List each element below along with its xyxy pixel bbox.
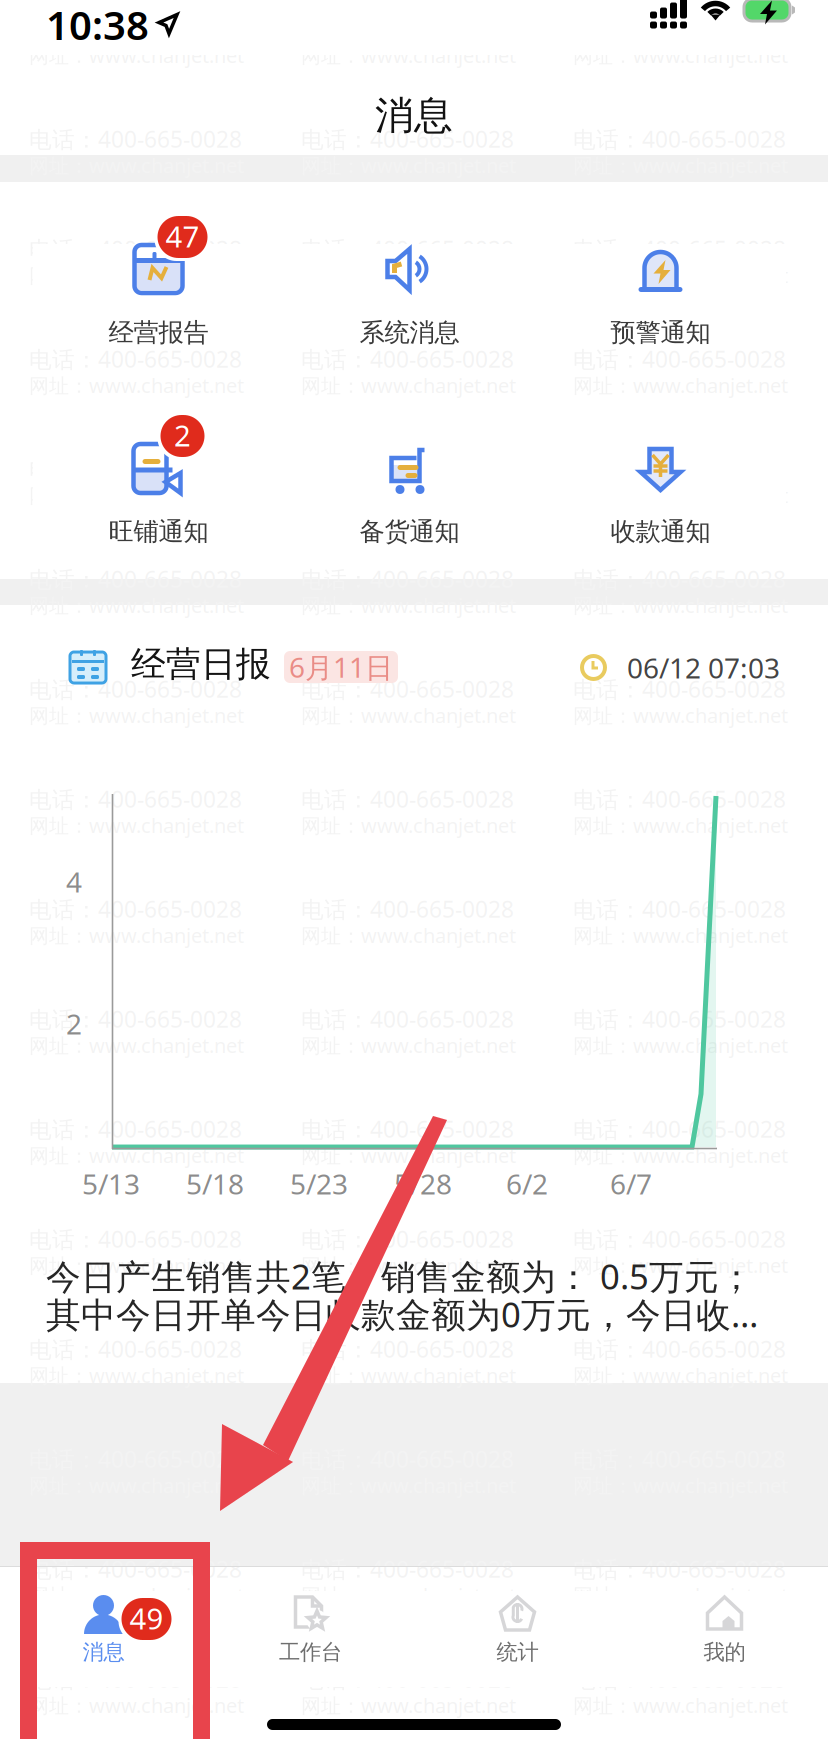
staticText: 电话：400-665-0028 [573,1334,786,1364]
staticText: 经营报告 [108,317,208,348]
button[interactable]: 预警通知 [535,244,786,346]
staticText: 电话：400-665-0028 [29,1444,242,1474]
staticText: 电话：400-665-0028 [29,674,242,704]
staticText: 网址：www.chanjet.net [573,482,788,509]
staticText: 电话：400-665-0028 [29,564,242,594]
staticText: 电话：400-665-0028 [29,344,242,374]
staticText: 电话：400-665-0028 [301,894,514,924]
staticText: 电话：400-665-0028 [573,124,786,154]
button[interactable]: 2 [33,443,284,545]
staticText: 网址：www.chanjet.net [29,1582,244,1609]
staticText: 网址：www.chanjet.net [301,1582,516,1609]
button[interactable]: 经营日报 [0,605,828,1383]
staticText: 5/23 [290,1165,348,1202]
staticText: 网址：www.chanjet.net [573,702,788,729]
staticText: 收款通知 [610,516,710,547]
staticText: 网址：www.chanjet.net [573,592,788,619]
staticText: 6/2 [506,1165,548,1202]
staticText: 电话：400-665-0028 [573,234,786,264]
staticText: 网址：www.chanjet.net [573,1142,788,1169]
staticText: 电话：400-665-0028 [29,234,242,264]
staticText: 电话：400-665-0028 [573,894,786,924]
staticText: 电话：400-665-0028 [29,894,242,924]
staticText: 电话：400-665-0028 [573,1004,786,1034]
staticText: 电话：400-665-0028 [29,1334,242,1364]
staticText: 网址：www.chanjet.net [573,152,788,179]
staticText: 电话：400-665-0028 [301,1004,514,1034]
staticText: 电话：400-665-0028 [301,234,514,264]
staticText: 电话：400-665-0028 [573,674,786,704]
staticText: 49 [129,1598,163,1637]
staticText: 网址：www.chanjet.net [301,1142,516,1169]
staticText: 网址：www.chanjet.net [29,152,244,179]
staticText: 电话：400-665-0028 [573,1114,786,1144]
staticText: 网址：www.chanjet.net [29,1362,244,1389]
staticText: 网址：www.chanjet.net [573,922,788,949]
button[interactable]: 统计 [414,1591,621,1687]
button[interactable]: 收款通知 [535,443,786,545]
button[interactable]: 工作台 [207,1591,414,1687]
staticText: 消息 [82,1639,124,1665]
staticText: 网址：www.chanjet.net [301,372,516,399]
staticText: 电话：400-665-0028 [573,14,786,44]
staticText: 网址：www.chanjet.net [29,1142,244,1169]
staticText: 电话：400-665-0028 [573,564,786,594]
staticText: 47 [165,216,199,255]
staticText: 网址：www.chanjet.net [29,372,244,399]
staticText: 网址：www.chanjet.net [301,1252,516,1279]
staticText: 网址：www.chanjet.net [573,1582,788,1609]
staticText: 电话：400-665-0028 [29,124,242,154]
staticText: 系统消息 [359,317,459,348]
staticText: 电话：400-665-0028 [301,1334,514,1364]
staticText: 电话：400-665-0028 [29,1224,242,1254]
staticText: 网址：www.chanjet.net [29,1472,244,1499]
staticText: 电话：400-665-0028 [573,454,786,484]
staticText: 6月11日 [289,648,393,686]
staticText: 预警通知 [610,317,710,348]
staticText: 网址：www.chanjet.net [573,1362,788,1389]
staticText: 电话：400-665-0028 [301,1554,514,1584]
staticText: 网址：www.chanjet.net [29,592,244,619]
staticText: 网址：www.chanjet.net [29,482,244,509]
staticText: 网址：www.chanjet.net [573,372,788,399]
button[interactable]: 备货通知 [284,443,535,545]
staticText: 网址：www.chanjet.net [301,482,516,509]
staticText: 电话：400-665-0028 [301,564,514,594]
staticText: 网址：www.chanjet.net [301,1032,516,1059]
staticText: 电话：400-665-0028 [301,454,514,484]
staticText: 网址：www.chanjet.net [301,1362,516,1389]
button[interactable]: 49 [0,1591,207,1687]
staticText: 旺铺通知 [108,516,208,547]
staticText: 网址：www.chanjet.net [573,1032,788,1059]
staticText: 电话：400-665-0028 [301,344,514,374]
staticText: 电话：400-665-0028 [301,1114,514,1144]
button[interactable]: 我的 [621,1591,828,1687]
staticText: 网址：www.chanjet.net [301,42,516,69]
staticText: 电话：400-665-0028 [573,1554,786,1584]
staticText: 电话：400-665-0028 [29,1664,242,1694]
staticText: 电话：400-665-0028 [29,1114,242,1144]
staticText: 消息 [375,92,453,139]
staticText: 统计 [496,1639,538,1665]
staticText: 网址：www.chanjet.net [301,702,516,729]
staticText: 网址：www.chanjet.net [301,922,516,949]
button[interactable]: 系统消息 [284,244,535,346]
staticText: 网址：www.chanjet.net [301,152,516,179]
staticText: 网址：www.chanjet.net [301,812,516,839]
staticText: 网址：www.chanjet.net [29,1252,244,1279]
staticText: 5/28 [394,1165,452,1202]
staticText: 电话：400-665-0028 [573,784,786,814]
staticText: 电话：400-665-0028 [29,1004,242,1034]
staticText: 其中今日开单今日收款金额为0万元，今日收… [46,1291,758,1337]
staticText: 网址：www.chanjet.net [29,1032,244,1059]
button[interactable]: 47 [33,244,284,346]
staticText: 我的 [703,1639,745,1665]
staticText: 电话：400-665-0028 [29,1554,242,1584]
staticText: 电话：400-665-0028 [29,14,242,44]
staticText: 网址：www.chanjet.net [29,922,244,949]
